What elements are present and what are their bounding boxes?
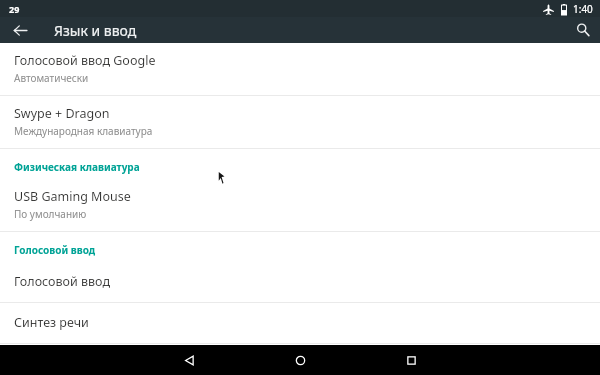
staticText: Голосовой ввод: [14, 243, 96, 257]
staticText: 29: [9, 3, 20, 15]
button[interactable]: Синтез речи: [0, 303, 600, 343]
staticText: Язык и ввод: [54, 21, 137, 40]
staticText: Синтез речи: [14, 314, 89, 331]
staticText: Swype + Dragon: [14, 105, 110, 122]
button[interactable]: Голосовой ввод: [0, 262, 600, 302]
button[interactable]: Голосовой ввод Google: [0, 43, 600, 95]
staticText: По умолчанию: [14, 207, 87, 221]
staticText: 1:40: [573, 2, 593, 16]
button[interactable]: Search: [566, 17, 600, 43]
button[interactable]: Home: [245, 345, 356, 375]
staticText: Автоматически: [14, 71, 89, 85]
button[interactable]: USB Gaming Mouse: [0, 179, 600, 231]
staticText: USB Gaming Mouse: [14, 188, 131, 205]
staticText: Международная клавиатура: [14, 124, 153, 138]
button[interactable]: Back: [0, 17, 40, 43]
button[interactable]: Recent apps: [356, 345, 467, 375]
staticText: Голосовой ввод: [14, 273, 110, 290]
staticText: Физическая клавиатура: [14, 160, 140, 174]
button[interactable]: Swype + Dragon: [0, 96, 600, 148]
staticText: Голосовой ввод Google: [14, 52, 156, 69]
button[interactable]: Back: [134, 345, 245, 375]
